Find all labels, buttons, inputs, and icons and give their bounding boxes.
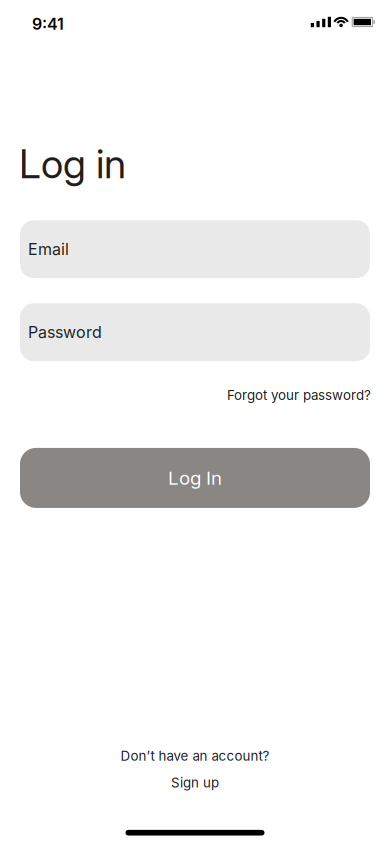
staticText: Don’t have an account? (120, 748, 269, 764)
staticText: 9:41 (32, 15, 64, 33)
staticText: Password (28, 323, 102, 342)
button[interactable]: Password (20, 303, 370, 361)
staticText: Log in (19, 140, 126, 187)
staticText: Log In (168, 467, 222, 489)
button[interactable]: Sign up (171, 775, 219, 790)
button[interactable]: Email (20, 220, 370, 278)
staticText: Sign up (171, 775, 219, 790)
staticText: Email (28, 240, 69, 259)
button[interactable]: Log In (20, 448, 370, 508)
button[interactable]: Forgot your password? (227, 387, 371, 403)
staticText: Forgot your password? (227, 387, 371, 403)
